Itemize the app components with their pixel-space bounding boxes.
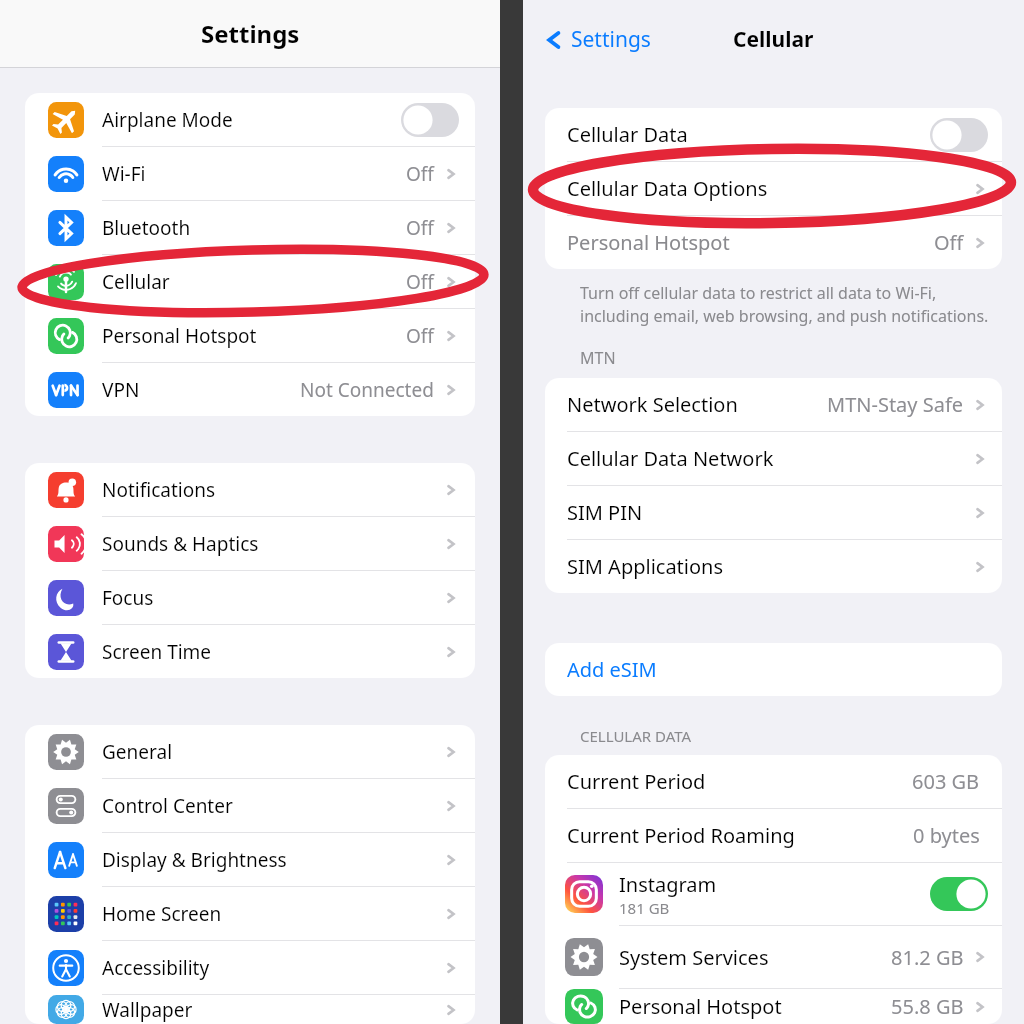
staticText: Off — [406, 215, 434, 241]
button[interactable]: Bluetooth — [25, 201, 475, 255]
other: Open — [443, 274, 459, 290]
staticText: System Services — [619, 944, 769, 971]
staticText: Personal Hotspot — [567, 229, 730, 256]
staticText: Cellular — [733, 25, 814, 54]
staticText: Turn off cellular data to restrict all d… — [580, 282, 989, 327]
button[interactable]: Airplane Mode — [25, 93, 475, 147]
staticText: Personal Hotspot — [102, 323, 257, 349]
button[interactable]: Home Screen — [25, 887, 475, 941]
button[interactable]: System Services — [545, 926, 1002, 989]
staticText: Instagram — [619, 871, 717, 898]
staticText: Cellular Data — [567, 121, 688, 148]
staticText: Bluetooth — [102, 215, 191, 241]
staticText: Personal Hotspot — [619, 993, 782, 1020]
staticText: 0 bytes — [913, 822, 980, 849]
button[interactable]: Toggle on — [930, 877, 988, 911]
button[interactable]: Current Period Roaming — [545, 809, 1002, 863]
other: Open — [443, 1002, 459, 1018]
other: Open — [972, 181, 988, 197]
staticText: General — [102, 739, 173, 765]
button[interactable]: Personal Hotspot — [545, 216, 1002, 269]
button[interactable]: Cellular Data — [545, 108, 1002, 162]
button[interactable]: Add eSIM — [545, 643, 1002, 696]
staticText: Display & Brightness — [102, 847, 287, 873]
other: Open — [972, 235, 988, 251]
other: Open — [443, 590, 459, 606]
other: Open — [443, 536, 459, 552]
staticText: Off — [406, 161, 434, 187]
staticText: Add eSIM — [567, 656, 657, 683]
button[interactable]: Personal Hotspot — [25, 309, 475, 363]
staticText: 603 GB — [912, 768, 980, 795]
other: Open — [443, 960, 459, 976]
button[interactable]: Display & Brightness — [25, 833, 475, 887]
staticText: Screen Time — [102, 639, 212, 665]
staticText: Wallpaper — [102, 997, 193, 1023]
staticText: Not Connected — [300, 377, 434, 403]
staticText: 81.2 GB — [891, 944, 964, 971]
other: Open — [443, 382, 459, 398]
staticText: Airplane Mode — [102, 107, 233, 133]
staticText: Settings — [571, 25, 651, 54]
staticText: Settings — [201, 17, 300, 50]
button[interactable]: Focus — [25, 571, 475, 625]
button[interactable]: Cellular — [25, 255, 475, 309]
staticText: Control Center — [102, 793, 233, 819]
other: Open — [443, 852, 459, 868]
staticText: SIM Applications — [567, 553, 724, 580]
button[interactable]: VPN — [25, 363, 475, 416]
staticText: Current Period — [567, 768, 706, 795]
staticText: VPN — [102, 377, 140, 403]
button[interactable]: Sounds & Haptics — [25, 517, 475, 571]
button[interactable]: Instagram — [545, 863, 1002, 926]
button[interactable]: SIM PIN — [545, 486, 1002, 540]
button[interactable]: General — [25, 725, 475, 779]
button[interactable]: Toggle off — [930, 118, 988, 152]
staticText: MTN-Stay Safe — [827, 391, 964, 418]
other: Open — [443, 482, 459, 498]
staticText: Home Screen — [102, 901, 222, 927]
staticText: Focus — [102, 585, 154, 611]
staticText: Network Selection — [567, 391, 738, 418]
other: Open — [972, 559, 988, 575]
other: Open — [443, 220, 459, 236]
staticText: 55.8 GB — [891, 993, 964, 1020]
other: Open — [972, 949, 988, 965]
button[interactable]: Cellular Data Network — [545, 432, 1002, 486]
button[interactable]: Settings — [543, 25, 651, 54]
other: Open — [443, 328, 459, 344]
staticText: Sounds & Haptics — [102, 531, 259, 557]
staticText: Cellular Data Network — [567, 445, 774, 472]
button[interactable]: Cellular Data Options — [545, 162, 1002, 216]
other: Open — [443, 906, 459, 922]
other: Open — [443, 166, 459, 182]
button[interactable]: Notifications — [25, 463, 475, 517]
other: Open — [443, 744, 459, 760]
staticText: Off — [406, 269, 434, 295]
other: Open — [972, 505, 988, 521]
other: Open — [443, 798, 459, 814]
button[interactable]: Network Selection — [545, 378, 1002, 432]
button[interactable]: SIM Applications — [545, 540, 1002, 593]
button[interactable]: Toggle off — [401, 103, 459, 137]
button[interactable]: Personal Hotspot — [545, 989, 1002, 1024]
staticText: 181 GB — [619, 898, 670, 918]
staticText: MTN — [580, 347, 616, 369]
staticText: CELLULAR DATA — [580, 726, 692, 746]
staticText: Notifications — [102, 477, 216, 503]
other: Open — [972, 999, 988, 1015]
button[interactable]: Screen Time — [25, 625, 475, 678]
button[interactable]: Current Period — [545, 755, 1002, 809]
other: Open — [972, 451, 988, 467]
other: Open — [443, 644, 459, 660]
button[interactable]: Wi-Fi — [25, 147, 475, 201]
button[interactable]: Accessibility — [25, 941, 475, 995]
staticText: Cellular Data Options — [567, 175, 768, 202]
staticText: Current Period Roaming — [567, 822, 795, 849]
button[interactable]: Wallpaper — [25, 995, 475, 1024]
staticText: Off — [406, 323, 434, 349]
staticText: Cellular — [102, 269, 170, 295]
button[interactable]: Control Center — [25, 779, 475, 833]
staticText: Accessibility — [102, 955, 210, 981]
staticText: SIM PIN — [567, 499, 643, 526]
